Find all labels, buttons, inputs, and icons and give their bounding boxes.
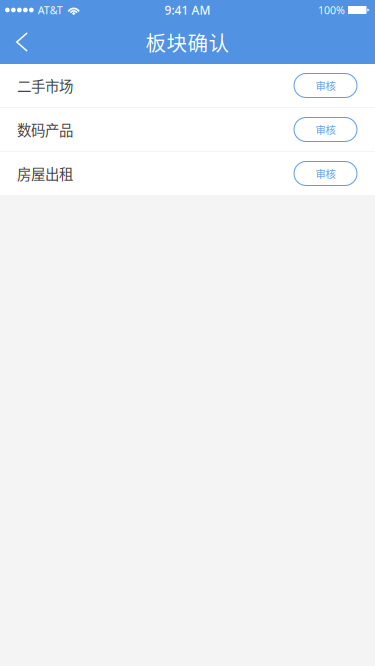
button[interactable]: Back: [0, 20, 44, 64]
staticText: 审核: [315, 78, 335, 93]
staticText: 100%: [318, 3, 345, 17]
staticText: 板块确认: [145, 27, 229, 57]
staticText: 房屋出租: [17, 163, 73, 184]
staticText: 审核: [315, 166, 335, 181]
button[interactable]: 审核: [294, 161, 357, 185]
staticText: 9:41 AM: [164, 2, 210, 18]
button[interactable]: 审核: [294, 117, 357, 141]
staticText: 数码产品: [17, 119, 73, 140]
staticText: AT&T: [38, 3, 63, 17]
button[interactable]: 审核: [294, 73, 357, 97]
staticText: 二手市场: [17, 75, 73, 96]
staticText: 审核: [315, 122, 335, 137]
